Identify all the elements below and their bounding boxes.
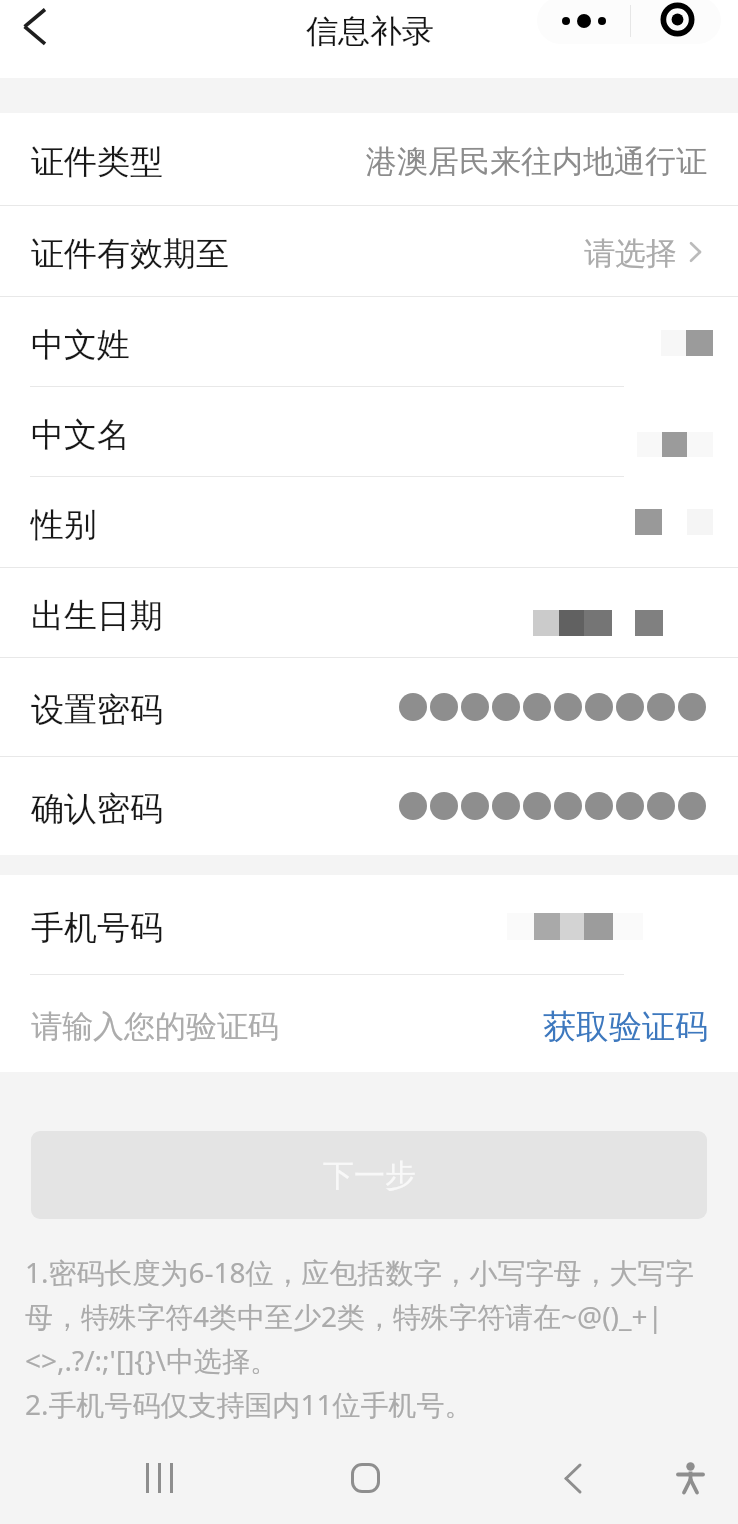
- button[interactable]: 中文姓: [0, 297, 738, 386]
- staticText: 获取验证码: [543, 1006, 708, 1048]
- button[interactable]: 确认密码: [0, 757, 738, 855]
- button[interactable]: Back: [2, 1, 54, 53]
- staticText: 确认密码: [31, 788, 163, 830]
- staticText: 出生日期: [31, 595, 163, 637]
- staticText: 下一步: [323, 1156, 416, 1195]
- button[interactable]: More options: [537, 0, 630, 44]
- button[interactable]: 证件有效期至: [0, 206, 738, 296]
- button[interactable]: Recent apps: [129, 1448, 189, 1508]
- staticText: 请输入您的验证码: [31, 1007, 279, 1046]
- staticText: 设置密码: [31, 689, 163, 731]
- button[interactable]: Accessibility: [660, 1448, 720, 1508]
- staticText: 手机号码: [31, 907, 163, 949]
- staticText: 证件类型: [31, 141, 163, 183]
- button[interactable]: Close mini program: [631, 0, 721, 44]
- staticText: 信息补录: [306, 11, 434, 51]
- staticText: 1.密码长度为6-18位，应包括数字，小写字母，大写字 母，特殊字符4类中至少2…: [25, 1253, 694, 1423]
- button[interactable]: 中文名: [0, 387, 738, 476]
- button[interactable]: 请输入您的验证码: [0, 975, 738, 1072]
- button[interactable]: 设置密码: [0, 658, 738, 756]
- staticText: 证件有效期至: [31, 233, 229, 275]
- staticText: 性别: [31, 504, 97, 546]
- button[interactable]: 获取验证码: [543, 1006, 708, 1048]
- staticText: 中文名: [31, 414, 130, 456]
- button[interactable]: 出生日期: [0, 568, 738, 657]
- button[interactable]: 手机号码: [0, 875, 738, 974]
- button[interactable]: 性别: [0, 477, 738, 567]
- staticText: 请选择: [584, 234, 677, 273]
- button[interactable]: 证件类型: [0, 113, 738, 205]
- button[interactable]: Home: [335, 1448, 395, 1508]
- staticText: 港澳居民来往内地通行证: [366, 142, 707, 181]
- staticText: 中文姓: [31, 324, 130, 366]
- button[interactable]: Back: [543, 1448, 603, 1508]
